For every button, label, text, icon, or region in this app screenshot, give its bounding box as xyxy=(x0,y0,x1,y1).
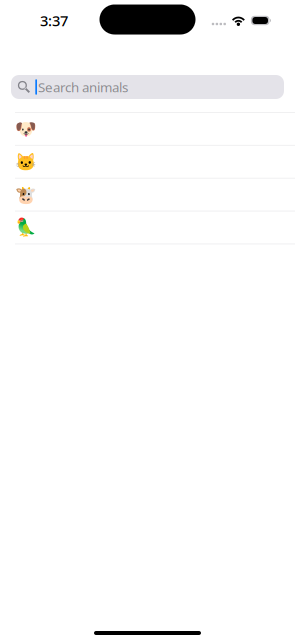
button[interactable]: Dog xyxy=(0,113,295,146)
staticText: 🐮 xyxy=(15,185,37,204)
staticText: Search animals xyxy=(38,78,128,96)
button[interactable]: Search animals xyxy=(11,75,284,99)
button[interactable]: Cow xyxy=(0,178,295,211)
button[interactable]: Cat xyxy=(0,146,295,178)
button[interactable]: Parrot xyxy=(0,211,295,244)
staticText: 🦜 xyxy=(15,218,37,237)
staticText: 🐶 xyxy=(15,119,37,139)
staticText: 3:37 xyxy=(40,11,68,30)
staticText: 🐱 xyxy=(15,152,37,172)
